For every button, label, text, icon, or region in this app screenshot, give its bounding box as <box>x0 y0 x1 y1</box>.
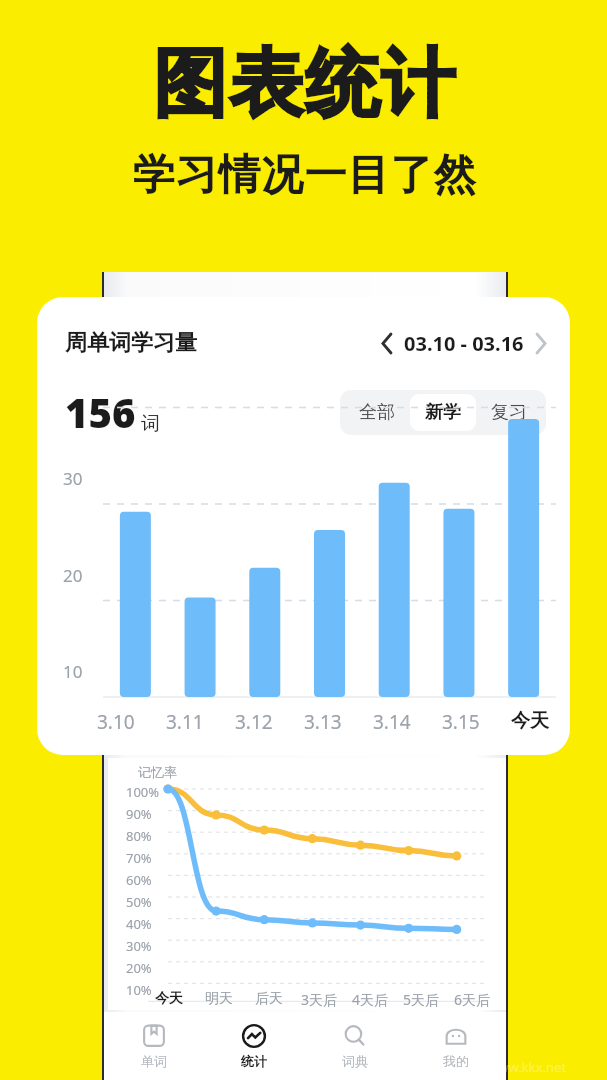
staticText: 30 <box>63 467 83 490</box>
button[interactable]: 词典 <box>304 1012 405 1080</box>
staticText: 学习情况一目了然 <box>132 149 476 202</box>
staticText: 今天 <box>155 990 183 1008</box>
staticText: 4天后 <box>352 990 389 1009</box>
staticText: 统计 <box>241 1053 267 1069</box>
staticText: 全部 <box>359 401 395 424</box>
staticText: 3.12 <box>235 709 273 735</box>
staticText: 10 <box>63 660 83 683</box>
staticText: 3.15 <box>442 709 480 735</box>
staticText: 6天后 <box>454 990 491 1009</box>
staticText: 20% <box>126 959 152 977</box>
button[interactable]: 统计 <box>204 1012 304 1080</box>
staticText: 3.11 <box>166 709 204 735</box>
button[interactable]: 新学 <box>410 394 476 431</box>
staticText: 20 <box>63 564 83 587</box>
staticText: 词典 <box>342 1053 368 1069</box>
staticText: 新学 <box>425 401 461 424</box>
staticText: 单词 <box>141 1053 167 1069</box>
staticText: 5天后 <box>403 990 440 1009</box>
staticText: 40% <box>126 915 152 933</box>
staticText: 3天后 <box>301 990 338 1009</box>
staticText: 3.10 <box>97 709 135 735</box>
staticText: 70% <box>126 849 152 867</box>
staticText: 03.10 - 03.16 <box>404 330 524 357</box>
staticText: 复习 <box>491 401 527 424</box>
button[interactable]: 我的 <box>405 1012 506 1080</box>
staticText: www.kkx.net <box>488 1058 566 1076</box>
button[interactable]: 全部 <box>344 394 410 431</box>
staticText: 周单词学习量 <box>65 329 197 357</box>
staticText: 我的 <box>443 1053 469 1069</box>
staticText: 后天 <box>255 990 283 1008</box>
staticText: 156 <box>65 385 136 439</box>
staticText: 词 <box>141 412 160 436</box>
staticText: 明天 <box>205 990 233 1008</box>
button[interactable]: 单词 <box>104 1012 204 1080</box>
staticText: 60% <box>126 871 152 889</box>
staticText: 80% <box>126 827 152 845</box>
staticText: 记忆率 <box>138 764 177 780</box>
button[interactable]: 复习 <box>476 394 542 431</box>
button[interactable]: Next week <box>535 334 546 353</box>
button[interactable]: Previous week <box>382 330 535 357</box>
staticText: 30% <box>126 937 152 955</box>
staticText: 50% <box>126 893 152 911</box>
staticText: 10% <box>126 981 152 999</box>
staticText: 今天 <box>511 709 549 733</box>
staticText: 3.14 <box>373 709 411 735</box>
staticText: 3.13 <box>304 709 342 735</box>
staticText: 100% <box>126 783 160 801</box>
staticText: 90% <box>126 805 152 823</box>
staticText: 图表统计 <box>152 38 456 131</box>
